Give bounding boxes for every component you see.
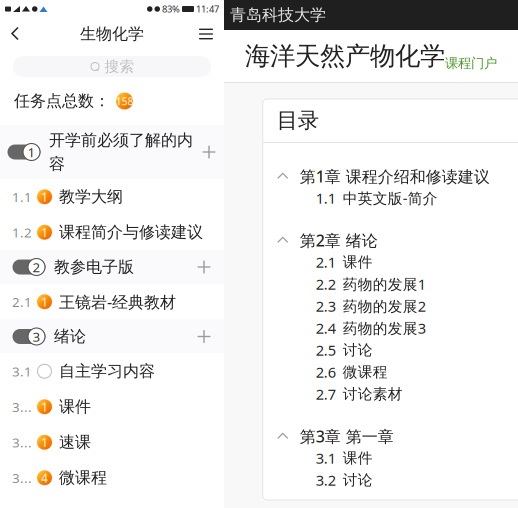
button[interactable]: 2.3 [263,295,518,317]
staticText: 课程简介与修读建议 [59,222,203,242]
staticText: 自主学习内容 [59,361,155,381]
staticText: 中英文版-简介 [343,188,438,208]
staticText: 药物的发展1 [343,274,426,294]
staticText: 第2章 绪论 [300,230,378,251]
staticText: 3.2 [316,470,336,490]
button[interactable]: 搜索 [0,56,224,77]
staticText: 课件 [343,449,373,467]
button[interactable]: 2.6 [263,361,518,383]
staticText: 4 [41,470,48,486]
button[interactable]: 2.1 [0,284,224,319]
staticText: 3.1 [12,362,32,380]
staticText: 1 [27,143,35,161]
staticText: 任务点总数： [14,91,110,111]
staticText: 1 [41,434,48,450]
button[interactable]: Menu [188,18,224,50]
staticText: 2.4 [316,318,336,338]
button[interactable]: 1.1 [263,187,518,209]
staticText: 3... [12,398,32,416]
staticText: 第3章 第一章 [300,426,394,447]
staticText: 11:47 [196,3,219,15]
staticText: 2.2 [316,274,336,294]
button[interactable]: 2 [0,250,224,284]
button[interactable]: 2.2 [263,273,518,295]
button[interactable]: 3... [0,460,224,495]
staticText: 1 [41,189,48,205]
button[interactable]: 3 [0,319,224,353]
staticText: 1 [41,224,48,240]
staticText: 生物化学 [80,24,144,44]
staticText: 1.2 [12,223,32,241]
staticText: 2.1 [316,252,336,272]
staticText: 3... [12,433,32,451]
staticText: 3 [32,328,40,345]
staticText: 王镜岩-经典教材 [59,291,176,312]
staticText: 微课程 [59,468,107,488]
staticText: 1.1 [12,188,32,206]
button[interactable]: 第2章 绪论 [263,209,518,251]
staticText: 目录 [277,107,319,134]
button[interactable]: Back [0,18,31,50]
staticText: 课件 [343,253,373,271]
button[interactable]: 3... [0,424,224,460]
staticText: 1.1 [316,188,336,208]
staticText: 第1章 课程介绍和修读建议 [300,166,490,187]
button[interactable]: 3.1 [263,447,518,469]
staticText: 158 [115,94,133,108]
staticText: 海洋天然产物化学 [245,40,445,71]
staticText: 1 [41,294,48,310]
staticText: 83% [162,3,180,15]
button[interactable]: 第3章 第一章 [263,405,518,447]
staticText: 药物的发展2 [343,296,426,316]
staticText: 讨论素材 [343,385,403,403]
staticText: 3.1 [316,448,336,468]
staticText: 2.1 [12,293,32,311]
staticText: 2.7 [316,384,336,404]
staticText: 3... [12,469,32,487]
staticText: 搜索 [104,57,134,75]
staticText: 教学大纲 [59,187,123,207]
staticText: 容 [49,154,65,174]
staticText: 微课程 [343,363,388,381]
staticText: 青岛科技大学 [230,5,326,25]
staticText: 课件 [59,397,91,417]
staticText: 药物的发展3 [343,318,426,338]
staticText: 2.6 [316,362,336,382]
staticText: 教参电子版 [54,257,134,277]
staticText: 讨论 [343,471,373,489]
button[interactable]: 1.2 [0,214,224,250]
button[interactable]: 1.1 [0,179,224,214]
button[interactable]: 2.7 [263,383,518,405]
staticText: 课程门户 [445,55,497,72]
staticText: 1 [41,399,48,415]
button[interactable]: 3.2 [263,469,518,491]
button[interactable]: 第1章 课程介绍和修读建议 [263,155,518,187]
staticText: 绪论 [54,327,86,346]
staticText: 速课 [59,432,91,452]
staticText: 开学前必须了解的内 [49,130,193,150]
button[interactable]: 3.1 [0,353,224,389]
staticText: 2.5 [316,340,336,360]
staticText: 2.3 [316,296,336,316]
staticText: 2 [32,258,40,276]
button[interactable]: 2.5 [263,339,518,361]
button[interactable]: 1 [0,125,229,179]
button[interactable]: 2.4 [263,317,518,339]
button[interactable]: 3... [0,389,224,424]
button[interactable]: 2.1 [263,251,518,273]
staticText: 讨论 [343,341,373,359]
